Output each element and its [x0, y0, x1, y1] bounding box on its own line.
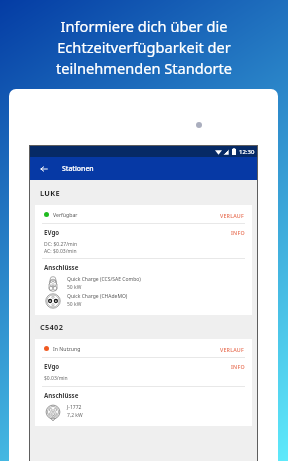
staticText: In Nutzung — [53, 345, 81, 352]
staticText: Anschlüsse — [44, 391, 79, 399]
staticText: EVgo — [44, 362, 60, 370]
staticText: LUKE — [40, 188, 60, 198]
button[interactable]: In Nutzung — [35, 339, 252, 426]
staticText: Quick Charge (CHAdeMO) — [67, 293, 128, 300]
staticText: 50 kW — [67, 301, 82, 308]
staticText: DC: $0.27/min AC: $0.03/min — [44, 241, 78, 254]
staticText: Anschlüsse — [44, 263, 79, 271]
staticText: INFO — [231, 363, 245, 370]
staticText: 12:30 — [239, 148, 255, 156]
staticText: VERLAUF — [220, 346, 244, 353]
staticText: 7,2 kW — [67, 412, 83, 419]
staticText: Stationen — [62, 164, 94, 173]
staticText: VERLAUF — [220, 212, 244, 219]
button[interactable]: Verfügbar — [35, 205, 252, 315]
button[interactable]: Back — [30, 157, 58, 180]
staticText: $0.03/min — [44, 375, 68, 382]
staticText: J-1772 — [67, 404, 82, 411]
staticText: EVgo — [44, 228, 60, 236]
staticText: INFO — [231, 229, 245, 236]
staticText: C5402 — [40, 322, 64, 332]
staticText: 50 kW — [67, 284, 82, 291]
staticText: Informiere dich über die Echtzeitverfügb… — [14, 16, 274, 78]
staticText: Quick Charge (CCS/SAE Combo) — [67, 276, 141, 283]
staticText: Verfügbar — [53, 211, 78, 218]
